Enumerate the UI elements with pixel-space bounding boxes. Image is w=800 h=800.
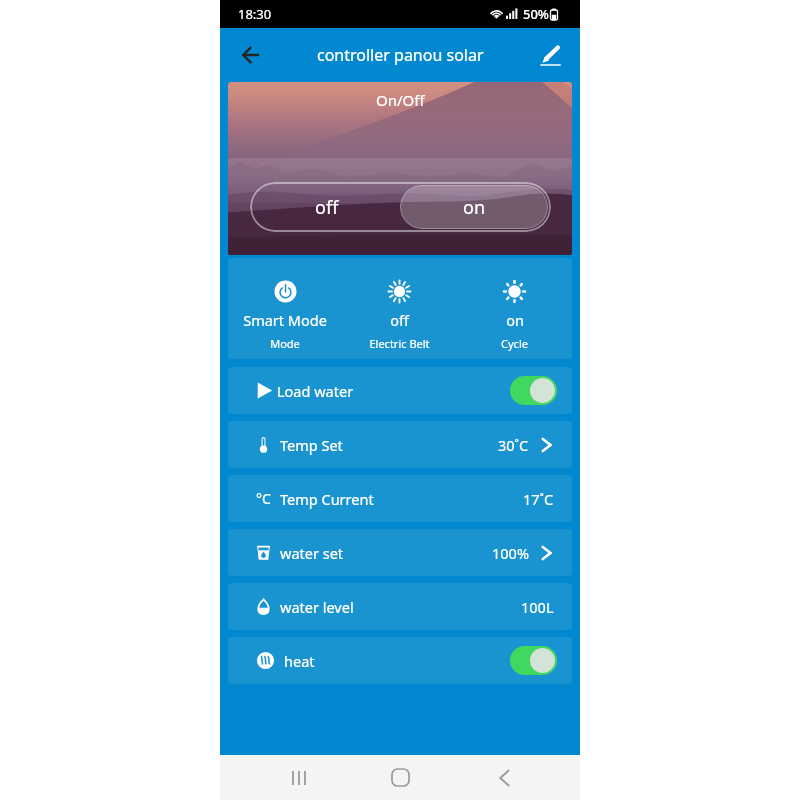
button[interactable]: off — [253, 185, 400, 229]
staticText: Electric Belt — [369, 336, 430, 351]
staticText: Temp Current — [280, 489, 374, 509]
button[interactable]: Recents — [276, 755, 321, 800]
staticText: Temp Set — [280, 435, 343, 455]
staticText: heat — [284, 651, 315, 671]
button[interactable]: on — [400, 185, 548, 229]
button[interactable]: heat — [228, 637, 572, 684]
button[interactable]: Smart Mode — [228, 258, 342, 359]
button[interactable]: off — [342, 258, 457, 359]
staticText: water level — [280, 597, 354, 617]
button[interactable]: Temp Set — [228, 421, 572, 468]
staticText: 17˚C — [523, 489, 554, 509]
staticText: Load water — [277, 381, 354, 401]
button[interactable] — [510, 646, 557, 675]
staticText: 18:30 — [238, 5, 272, 23]
staticText: 50% — [523, 5, 549, 23]
button[interactable]: Back — [228, 33, 272, 77]
staticText: 100% — [492, 543, 529, 563]
staticText: Mode — [270, 336, 300, 351]
button[interactable]: °C — [228, 475, 572, 522]
staticText: 100L — [521, 597, 554, 617]
staticText: on — [506, 310, 524, 330]
staticText: off — [315, 195, 339, 220]
staticText: Smart Mode — [243, 310, 327, 330]
button[interactable]: Back — [482, 755, 527, 800]
staticText: °C — [256, 489, 271, 508]
staticText: 30˚C — [498, 435, 529, 455]
staticText: On/Off — [376, 90, 425, 110]
button[interactable]: Home — [378, 755, 423, 800]
button[interactable]: water set — [228, 529, 572, 576]
button[interactable]: Load water — [228, 367, 572, 414]
staticText: water set — [280, 543, 344, 563]
button[interactable] — [510, 376, 557, 405]
button[interactable]: water level — [228, 583, 572, 630]
staticText: controller panou solar — [317, 44, 484, 66]
staticText: Cycle — [501, 336, 528, 351]
button[interactable]: Edit — [528, 33, 572, 77]
staticText: on — [463, 195, 486, 220]
staticText: off — [390, 310, 409, 330]
button[interactable]: on — [457, 258, 572, 359]
